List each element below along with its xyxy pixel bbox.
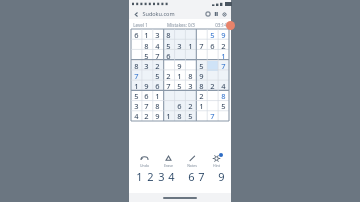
button[interactable]: Bookmarks bbox=[212, 10, 220, 18]
button[interactable]: 3 bbox=[141, 61, 152, 71]
button[interactable]: 2 bbox=[207, 81, 218, 91]
button[interactable] bbox=[174, 51, 185, 61]
button[interactable]: 8 bbox=[196, 81, 207, 91]
button[interactable] bbox=[207, 101, 218, 111]
button[interactable]: 4 bbox=[218, 81, 229, 91]
button[interactable] bbox=[196, 51, 207, 61]
button[interactable] bbox=[141, 71, 152, 81]
button[interactable]: 3 bbox=[152, 29, 163, 40]
staticText: 2 bbox=[221, 41, 226, 51]
button[interactable] bbox=[185, 91, 196, 101]
button[interactable]: 2 bbox=[152, 61, 163, 71]
button[interactable]: 6 bbox=[131, 29, 141, 40]
button[interactable]: Undo bbox=[135, 154, 153, 168]
button[interactable]: 3 bbox=[185, 81, 196, 91]
button[interactable]: 2 bbox=[145, 169, 156, 183]
button[interactable]: 6 bbox=[186, 169, 196, 183]
button[interactable] bbox=[185, 29, 196, 40]
button[interactable]: 4 bbox=[166, 169, 176, 183]
button[interactable]: 3 bbox=[174, 40, 185, 51]
button[interactable]: 7 bbox=[218, 61, 229, 71]
button[interactable]: 3 bbox=[131, 101, 141, 111]
button[interactable] bbox=[174, 29, 185, 40]
button[interactable]: Erase bbox=[159, 154, 177, 168]
button[interactable]: 5 bbox=[163, 40, 174, 51]
button[interactable]: 6 bbox=[163, 51, 174, 61]
button[interactable]: 4 bbox=[152, 40, 163, 51]
button[interactable]: 9 bbox=[174, 61, 185, 71]
button[interactable] bbox=[163, 101, 174, 111]
button[interactable]: 5 bbox=[131, 91, 141, 101]
button[interactable]: 8 bbox=[141, 40, 152, 51]
button[interactable]: 5 bbox=[207, 29, 218, 40]
button[interactable]: 9 bbox=[196, 71, 207, 81]
button[interactable] bbox=[207, 91, 218, 101]
button[interactable] bbox=[207, 51, 218, 61]
button[interactable] bbox=[163, 61, 174, 71]
button[interactable] bbox=[163, 91, 174, 101]
button[interactable] bbox=[207, 71, 218, 81]
button[interactable]: Tabs bbox=[204, 10, 212, 18]
button[interactable]: 5 bbox=[174, 81, 185, 91]
button[interactable]: 7 bbox=[196, 40, 207, 51]
button[interactable] bbox=[196, 111, 207, 121]
button[interactable] bbox=[218, 71, 229, 81]
button[interactable]: 1 bbox=[163, 111, 174, 121]
button[interactable]: 7 bbox=[163, 81, 174, 91]
button[interactable]: 1 bbox=[131, 81, 141, 91]
button[interactable]: 1 bbox=[134, 169, 145, 183]
button[interactable]: 2 bbox=[218, 40, 229, 51]
button[interactable]: 5 bbox=[141, 51, 152, 61]
button[interactable]: 8 bbox=[185, 71, 196, 81]
button[interactable]: 1 bbox=[185, 40, 196, 51]
button[interactable]: 2 bbox=[163, 71, 174, 81]
button[interactable]: 7 bbox=[196, 169, 206, 183]
button[interactable]: 3 bbox=[156, 169, 166, 183]
button[interactable]: 5 bbox=[218, 101, 229, 111]
button[interactable]: 1 bbox=[141, 29, 152, 40]
staticText: 6 bbox=[210, 41, 215, 51]
button[interactable]: 7 bbox=[131, 71, 141, 81]
button[interactable]: 6 bbox=[152, 81, 163, 91]
button[interactable]: 8 bbox=[152, 101, 163, 111]
button[interactable]: 6 bbox=[207, 40, 218, 51]
button[interactable]: 6 bbox=[174, 101, 185, 111]
button[interactable]: Back bbox=[132, 10, 140, 18]
button[interactable]: 1 bbox=[174, 71, 185, 81]
button[interactable]: 7 bbox=[207, 111, 218, 121]
button[interactable]: 7 bbox=[152, 51, 163, 61]
button[interactable]: 1 bbox=[196, 101, 207, 111]
button[interactable]: 8 bbox=[218, 91, 229, 101]
button[interactable]: 8 bbox=[174, 111, 185, 121]
button[interactable]: 5 bbox=[196, 61, 207, 71]
button[interactable] bbox=[185, 51, 196, 61]
button[interactable]: 9 bbox=[152, 111, 163, 121]
button[interactable]: 2 bbox=[185, 101, 196, 111]
button[interactable]: 2 bbox=[141, 111, 152, 121]
button[interactable]: 8 bbox=[131, 61, 141, 71]
button[interactable] bbox=[218, 111, 229, 121]
button[interactable]: 9 bbox=[141, 81, 152, 91]
button[interactable]: 6 bbox=[141, 91, 152, 101]
button[interactable]: 4 bbox=[131, 111, 141, 121]
button[interactable]: Notes bbox=[183, 154, 201, 168]
button[interactable] bbox=[196, 29, 207, 40]
button[interactable] bbox=[131, 40, 141, 51]
button[interactable]: Hint bbox=[207, 154, 225, 168]
button[interactable]: Settings bbox=[220, 10, 228, 18]
button[interactable] bbox=[207, 61, 218, 71]
button[interactable] bbox=[174, 91, 185, 101]
button[interactable]: 9 bbox=[216, 169, 226, 183]
button[interactable] bbox=[131, 51, 141, 61]
button[interactable]: 8 bbox=[163, 29, 174, 40]
button[interactable]: 9 bbox=[218, 29, 229, 40]
button[interactable]: 5 bbox=[152, 71, 163, 81]
button[interactable] bbox=[185, 61, 196, 71]
button[interactable]: 1 bbox=[218, 51, 229, 61]
button[interactable]: 5 bbox=[185, 111, 196, 121]
button[interactable]: 2 bbox=[196, 91, 207, 101]
button[interactable]: 7 bbox=[141, 101, 152, 111]
button[interactable]: 1 bbox=[152, 91, 163, 101]
